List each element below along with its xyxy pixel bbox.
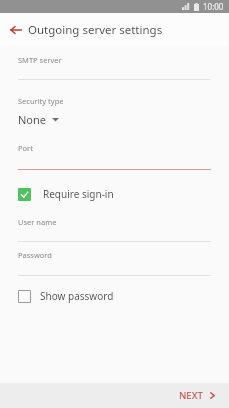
- staticText: Require sign-in: [43, 187, 114, 201]
- staticText: Show password: [40, 289, 114, 303]
- staticText: SMTP server: [18, 55, 62, 65]
- staticText: NEXT: [179, 389, 203, 402]
- staticText: 10:00: [203, 1, 224, 12]
- button[interactable]: Show password: [0, 285, 229, 307]
- button[interactable]: Back: [6, 20, 26, 40]
- staticText: None: [18, 112, 47, 127]
- staticText: Port: [18, 143, 33, 153]
- staticText: Password: [18, 250, 52, 260]
- staticText: User name: [18, 217, 57, 227]
- button[interactable]: None: [0, 110, 229, 129]
- staticText: Security type: [18, 96, 64, 106]
- button[interactable]: NEXT: [165, 384, 229, 407]
- button[interactable]: Require sign-in: [0, 183, 229, 205]
- staticText: Outgoing server settings: [28, 22, 163, 38]
